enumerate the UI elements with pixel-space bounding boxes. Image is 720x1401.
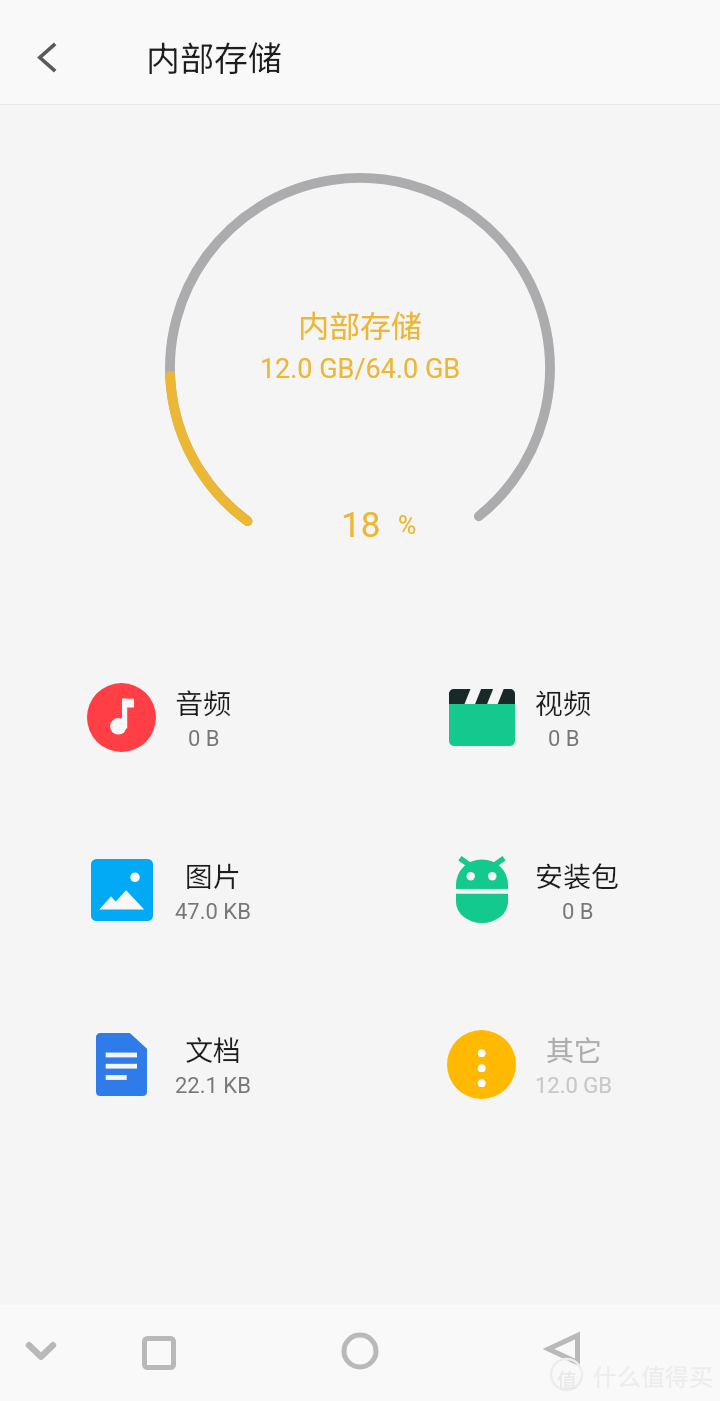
staticText: 0 B: [562, 899, 594, 925]
staticText: 12.0 GB: [535, 1073, 613, 1099]
button[interactable]: Hide keyboard: [10, 1320, 72, 1382]
staticText: 12.0 GB/64.0 GB: [0, 353, 720, 385]
staticText: 图片: [185, 855, 242, 896]
button[interactable]: 视频: [360, 667, 690, 767]
staticText: 安装包: [535, 855, 620, 896]
button[interactable]: 其它: [360, 1014, 690, 1114]
button[interactable]: Home: [329, 1320, 391, 1382]
staticText: 什么值得买: [593, 1358, 713, 1393]
button[interactable]: Back: [532, 1318, 594, 1380]
button[interactable]: 图片: [0, 840, 330, 940]
staticText: 值: [557, 1365, 577, 1394]
staticText: 内部存储: [0, 302, 720, 347]
staticText: %: [398, 511, 417, 540]
staticText: 内部存储: [146, 32, 282, 81]
button[interactable]: 文档: [0, 1014, 330, 1114]
button[interactable]: 安装包: [360, 840, 690, 940]
staticText: 音频: [175, 682, 232, 723]
staticText: 0 B: [188, 726, 220, 752]
button[interactable]: Back: [12, 22, 82, 92]
staticText: 18: [341, 505, 381, 546]
button[interactable]: Recent apps: [128, 1322, 190, 1384]
staticText: 0 B: [548, 726, 580, 752]
staticText: 文档: [185, 1029, 242, 1070]
staticText: 47.0 KB: [175, 899, 251, 925]
staticText: 其它: [546, 1029, 603, 1070]
button[interactable]: 音频: [0, 667, 330, 767]
staticText: 22.1 KB: [175, 1073, 251, 1099]
staticText: 视频: [535, 682, 592, 723]
